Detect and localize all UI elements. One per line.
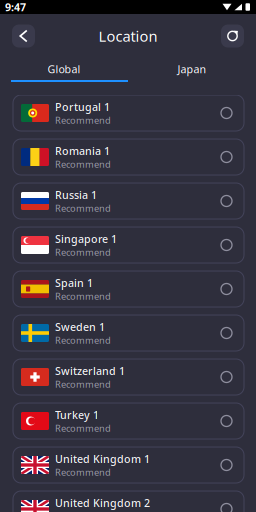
staticText: Recommend <box>55 158 111 170</box>
staticText: Romania 1 <box>55 144 110 158</box>
staticText: Global <box>47 62 80 76</box>
button[interactable]: Switzerland 1 <box>13 359 244 395</box>
button[interactable]: Japan <box>128 58 256 80</box>
button[interactable]: Romania 1 <box>13 139 244 175</box>
staticText: Recommend <box>55 466 111 478</box>
staticText: Recommend <box>55 202 111 214</box>
staticText: Recommend <box>55 290 111 302</box>
staticText: United Kingdom 2 <box>55 496 150 510</box>
staticText: Switzerland 1 <box>55 364 125 378</box>
staticText: Russia 1 <box>55 188 97 202</box>
staticText: Singapore 1 <box>55 232 117 246</box>
staticText: Portugal 1 <box>55 100 110 114</box>
staticText: Location <box>98 26 157 46</box>
staticText: 9:47 <box>5 0 26 14</box>
button[interactable]: Global <box>0 58 128 80</box>
staticText: Recommend <box>55 378 111 390</box>
staticText: Recommend <box>55 246 111 258</box>
button[interactable]: United Kingdom 2 <box>13 491 244 512</box>
staticText: Japan <box>177 62 206 76</box>
button[interactable]: Spain 1 <box>13 271 244 307</box>
staticText: Recommend <box>55 114 111 126</box>
staticText: Turkey 1 <box>55 408 99 422</box>
button[interactable]: Turkey 1 <box>13 403 244 439</box>
button[interactable]: United Kingdom 1 <box>13 447 244 483</box>
staticText: Spain 1 <box>55 276 93 290</box>
button[interactable]: Portugal 1 <box>13 95 244 131</box>
staticText: Recommend <box>55 334 111 346</box>
button[interactable]: Refresh <box>221 24 244 47</box>
button[interactable]: Russia 1 <box>13 183 244 219</box>
button[interactable]: Sweden 1 <box>13 315 244 351</box>
button[interactable]: Back <box>12 24 35 47</box>
staticText: United Kingdom 1 <box>55 452 150 466</box>
button[interactable]: Singapore 1 <box>13 227 244 263</box>
staticText: Sweden 1 <box>55 320 105 334</box>
staticText: Recommend <box>55 422 111 434</box>
